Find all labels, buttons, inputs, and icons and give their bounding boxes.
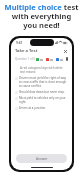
staticText: Answer	[36, 157, 48, 161]
button[interactable]: Enters at a junction.	[15, 106, 68, 110]
staticText: Should slow down but never stop.	[19, 90, 68, 94]
staticText: A red octagonal sign with white text mea…	[20, 66, 68, 74]
button[interactable]: Must yield to vehicles only on your righ…	[15, 96, 68, 104]
staticText: 9:41	[16, 41, 23, 45]
button[interactable]: Close	[62, 48, 68, 54]
button[interactable]: Drivers must yield the right-of-way to c…	[15, 76, 68, 88]
button[interactable]: Answer	[16, 154, 67, 163]
staticText: Enters at a junction.	[19, 106, 68, 110]
button[interactable]: Should slow down but never stop.	[15, 90, 68, 94]
staticText: Drivers must yield the right-of-way to c…	[19, 76, 68, 88]
staticText: Question 1 of 5	[15, 57, 36, 61]
staticText: Multiple choice test with everything you…	[4, 2, 79, 30]
staticText: Take a Test	[15, 48, 38, 54]
button[interactable]: Share	[56, 58, 63, 61]
staticText: Must yield to vehicles only on your righ…	[19, 96, 68, 104]
button[interactable]: Delete	[46, 58, 53, 61]
button[interactable]: Add	[36, 58, 43, 61]
button[interactable]: A red octagonal sign with white text mea…	[15, 66, 68, 74]
button[interactable]: Preview	[66, 57, 68, 61]
